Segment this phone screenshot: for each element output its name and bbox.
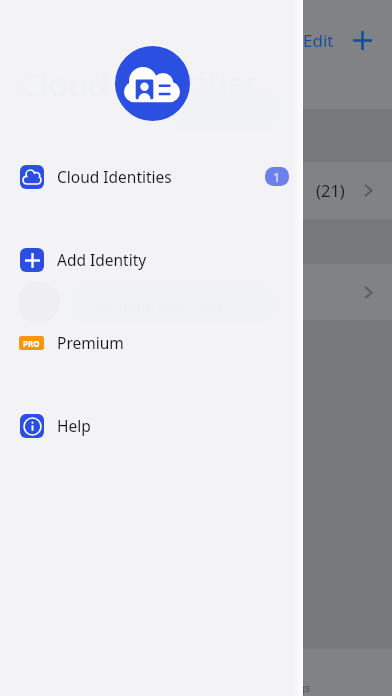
button[interactable]: Settings (265, 657, 317, 695)
button[interactable]: PRO (0, 301, 303, 384)
button[interactable]: Edit (303, 29, 334, 52)
staticText: PRO (23, 338, 40, 349)
staticText: Cloud Identities (19, 62, 262, 106)
staticText: Cloud Identities (57, 166, 172, 187)
staticText: Settings (272, 681, 311, 695)
button[interactable]: Cloud Identities (0, 135, 303, 218)
staticText: Help (57, 415, 91, 436)
staticText: Add Identity (57, 249, 147, 270)
button[interactable]: Add Identity (0, 218, 303, 301)
staticText: Edit (303, 29, 334, 52)
staticText: (21) (316, 179, 345, 201)
staticText: Premium (57, 332, 124, 353)
button[interactable]: Add (348, 26, 376, 54)
button[interactable]: Help (0, 384, 303, 467)
staticText: 1 (273, 168, 281, 186)
